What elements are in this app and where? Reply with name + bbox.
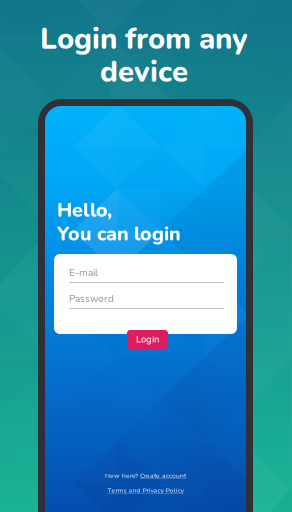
- button[interactable]: New here? Create account: [105, 471, 186, 480]
- button[interactable]: Login: [127, 330, 168, 349]
- button[interactable]: Terms and Privacy Policy: [107, 486, 183, 495]
- staticText: Hello,: [57, 197, 112, 224]
- button[interactable]: E-mail: [69, 266, 224, 288]
- staticText: device: [100, 52, 188, 92]
- staticText: Login from any: [40, 19, 248, 59]
- staticText: Terms and Privacy Policy: [107, 486, 183, 495]
- staticText: You can login: [57, 221, 181, 247]
- staticText: New here? Create account: [105, 471, 186, 480]
- staticText: Password: [69, 292, 114, 306]
- button[interactable]: Password: [69, 292, 224, 314]
- staticText: E-mail: [69, 266, 98, 280]
- staticText: Login: [136, 333, 159, 346]
